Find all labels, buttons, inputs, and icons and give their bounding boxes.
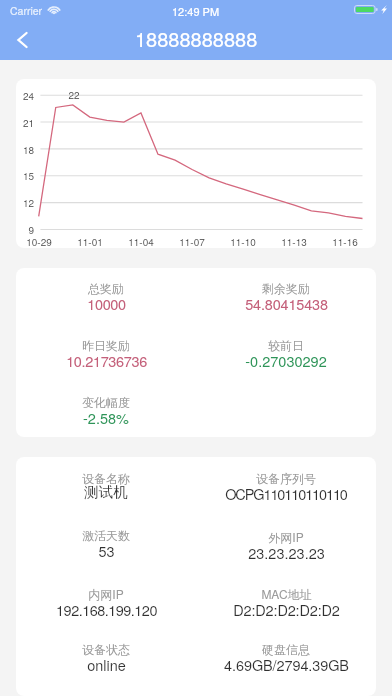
staticText: MAC地址 — [261, 585, 312, 602]
staticText: 内网IP — [88, 585, 124, 602]
staticText: 设备状态 — [82, 642, 130, 657]
staticText: 10-29 — [23, 235, 55, 248]
staticText: 11-10 — [227, 235, 259, 248]
staticText: -0.27030292 — [245, 350, 327, 371]
staticText: 昨日奖励 — [82, 338, 130, 353]
staticText: 外网IP — [268, 528, 304, 545]
button[interactable]: Back — [0, 20, 46, 60]
staticText: 11-16 — [329, 235, 361, 248]
staticText: 18 — [16, 143, 34, 157]
staticText: 11-04 — [125, 235, 157, 248]
staticText: 18888888888 — [135, 24, 258, 53]
staticText: 剩余奖励 — [262, 281, 310, 296]
staticText: 11-01 — [74, 235, 106, 248]
staticText: 激活天数 — [82, 528, 130, 543]
staticText: 12:49 PM — [172, 3, 220, 19]
staticText: 21 — [16, 116, 34, 130]
staticText: 23.23.23.23 — [248, 542, 325, 563]
staticText: 22 — [58, 88, 90, 102]
staticText: 15 — [16, 169, 34, 183]
staticText: 53 — [98, 540, 115, 561]
staticText: 设备名称 — [82, 471, 130, 486]
staticText: 54.80415438 — [245, 293, 328, 314]
staticText: 4.69GB/2794.39GB — [224, 654, 349, 675]
staticText: 24 — [16, 89, 34, 103]
staticText: OCPG110110110110 — [225, 483, 347, 504]
staticText: 总奖励 — [88, 281, 124, 296]
staticText: 变化幅度 — [82, 395, 130, 410]
staticText: -2.58% — [83, 407, 129, 428]
staticText: 设备序列号 — [256, 471, 316, 486]
staticText: 11-07 — [176, 235, 208, 248]
staticText: D2:D2:D2:D2:D2 — [233, 599, 340, 620]
staticText: 10.21736736 — [66, 350, 147, 371]
staticText: 192.168.199.120 — [56, 599, 157, 620]
staticText: online — [87, 654, 126, 675]
staticText: 11-13 — [278, 235, 310, 248]
staticText: Carrier — [10, 3, 43, 18]
staticText: 较前日 — [268, 338, 304, 353]
staticText: 12 — [16, 196, 34, 210]
staticText: 9 — [16, 223, 34, 237]
staticText: 硬盘信息 — [262, 642, 310, 657]
staticText: 10000 — [87, 293, 126, 314]
staticText: 测试机 — [84, 483, 128, 501]
